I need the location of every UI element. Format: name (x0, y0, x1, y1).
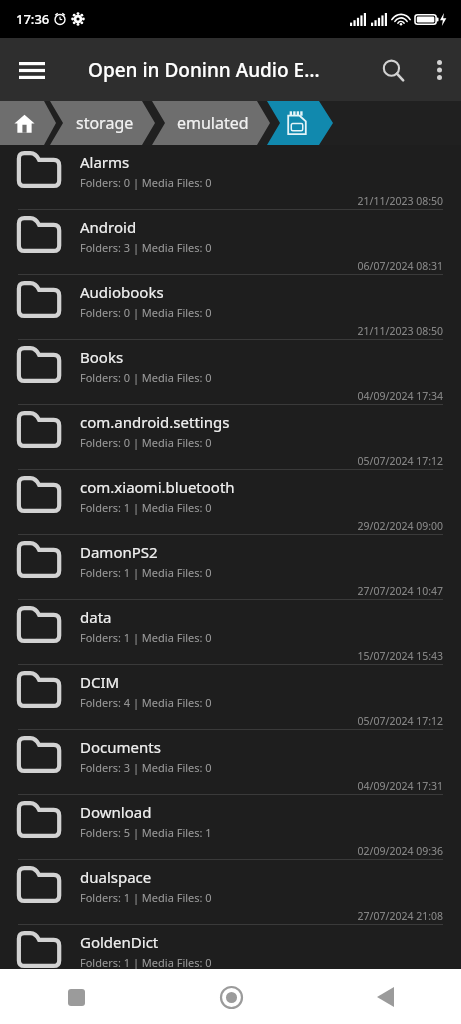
staticText: Books (80, 347, 124, 367)
staticText: 02/09/2024 09:36 (357, 844, 443, 858)
staticText: Folders: 5 | Media Files: 1 (80, 825, 212, 840)
button[interactable]: dualspace (0, 860, 461, 925)
button[interactable]: emulated (152, 101, 270, 145)
staticText: Android (80, 217, 137, 237)
button[interactable]: Back (361, 973, 409, 1021)
staticText: Alarms (80, 152, 130, 172)
staticText: Documents (80, 737, 161, 757)
staticText: Download (80, 802, 152, 822)
staticText: Folders: 1 | Media Files: 0 (80, 630, 212, 645)
staticText: com.xiaomi.bluetooth (80, 477, 235, 497)
staticText: Folders: 1 | Media Files: 0 (80, 890, 212, 905)
button[interactable]: DamonPS2 (0, 535, 461, 600)
button[interactable]: data (0, 600, 461, 665)
staticText: 29/02/2024 09:00 (357, 519, 443, 533)
staticText: Audiobooks (80, 282, 164, 302)
button[interactable]: Home (207, 973, 255, 1021)
staticText: 21/11/2023 08:50 (357, 194, 443, 208)
staticText: com.android.settings (80, 412, 230, 432)
staticText: Open in Doninn Audio E… (88, 57, 320, 83)
button[interactable]: DCIM (0, 665, 461, 730)
button[interactable]: storage (50, 101, 155, 145)
staticText: Folders: 0 | Media Files: 0 (80, 435, 212, 450)
staticText: DamonPS2 (80, 542, 158, 562)
button[interactable]: com.android.settings (0, 405, 461, 470)
staticText: emulated (177, 112, 249, 134)
staticText: 27/07/2024 21:08 (357, 909, 443, 923)
staticText: Folders: 0 | Media Files: 0 (80, 175, 212, 190)
button[interactable]: Books (0, 340, 461, 405)
button[interactable]: Open navigation menu (10, 48, 54, 92)
button[interactable]: Android (0, 210, 461, 275)
button[interactable]: Download (0, 795, 461, 860)
staticText: 15/07/2024 15:43 (357, 649, 443, 663)
staticText: dualspace (80, 867, 152, 887)
staticText: 27/07/2024 10:47 (357, 584, 443, 598)
staticText: Folders: 1 | Media Files: 0 (80, 565, 212, 580)
staticText: 04/09/2024 17:31 (357, 779, 443, 793)
button[interactable]: Documents (0, 730, 461, 795)
staticText: storage (76, 112, 134, 134)
staticText: Folders: 0 | Media Files: 0 (80, 370, 212, 385)
staticText: Folders: 1 | Media Files: 0 (80, 955, 212, 970)
staticText: GoldenDict (80, 932, 159, 952)
staticText: 21/11/2023 08:50 (357, 324, 443, 338)
staticText: 06/07/2024 08:31 (357, 259, 443, 273)
button[interactable]: Audiobooks (0, 275, 461, 340)
staticText: Folders: 3 | Media Files: 0 (80, 240, 212, 255)
staticText: Folders: 1 | Media Files: 0 (80, 500, 212, 515)
button[interactable]: Alarms (0, 145, 461, 210)
staticText: DCIM (80, 672, 120, 692)
button[interactable]: GoldenDict (0, 925, 461, 990)
button[interactable]: com.xiaomi.bluetooth (0, 470, 461, 535)
staticText: Folders: 0 | Media Files: 0 (80, 305, 212, 320)
button[interactable]: SD card storage (267, 101, 333, 145)
button[interactable]: Home (0, 101, 56, 145)
staticText: 17:36 (16, 10, 50, 28)
staticText: Folders: 4 | Media Files: 0 (80, 695, 212, 710)
staticText: 04/09/2024 17:34 (357, 389, 443, 403)
button[interactable]: More options (417, 48, 461, 92)
staticText: Folders: 3 | Media Files: 0 (80, 760, 212, 775)
staticText: 05/07/2024 17:12 (357, 714, 443, 728)
button[interactable]: Recent apps (52, 973, 100, 1021)
staticText: 05/07/2024 17:12 (357, 454, 443, 468)
staticText: data (80, 607, 112, 627)
button[interactable]: Search (369, 46, 417, 94)
